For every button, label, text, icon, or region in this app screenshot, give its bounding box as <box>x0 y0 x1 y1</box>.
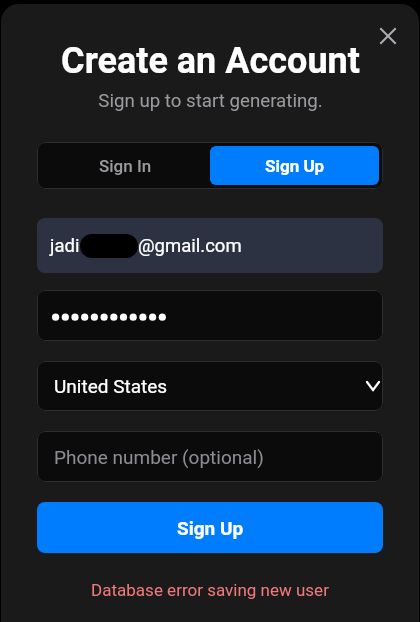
button[interactable]: jadi <box>37 218 383 273</box>
button[interactable]: Sign Up <box>210 146 379 185</box>
staticText: Database error saving new user <box>91 580 329 600</box>
button[interactable]: Sign In <box>41 146 210 185</box>
staticText: United States <box>54 375 168 397</box>
button[interactable] <box>37 290 383 341</box>
button[interactable]: Close <box>370 18 406 54</box>
staticText: jadi <box>50 235 80 257</box>
button[interactable]: Sign Up <box>37 502 383 553</box>
staticText: Phone number (optional) <box>54 446 264 468</box>
staticText: Sign In <box>99 156 152 176</box>
staticText: @gmail.com <box>138 235 242 257</box>
staticText: Create an Account <box>61 40 360 82</box>
staticText: Sign Up <box>265 156 325 176</box>
button[interactable]: United States <box>37 361 383 411</box>
staticText: Sign Up <box>177 517 244 539</box>
staticText: Sign up to start generating. <box>98 90 323 112</box>
button[interactable]: Phone number (optional) <box>37 431 383 482</box>
